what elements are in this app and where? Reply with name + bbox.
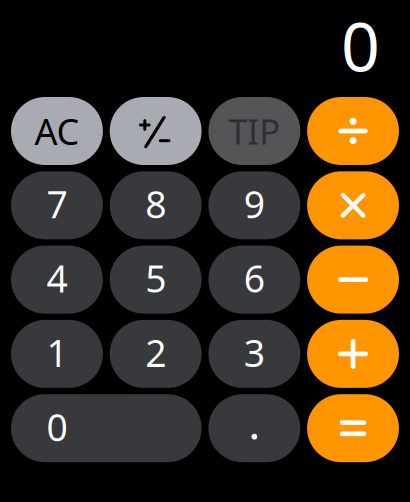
staticText: 6 [244,253,265,303]
staticText: TIP [228,108,280,154]
button[interactable]: AC [11,97,103,165]
button[interactable]: 2 [110,320,202,388]
button[interactable]: 3 [208,320,300,388]
button[interactable]: Decimal point [208,394,300,462]
button[interactable]: 7 [11,171,103,239]
staticText: 2 [145,328,166,377]
staticText: 0 [46,402,67,451]
button[interactable]: 1 [11,320,103,388]
button[interactable]: Minus [307,246,399,314]
button[interactable]: Plus minus [110,97,202,165]
button[interactable]: TIP [208,97,300,165]
staticText: 5 [145,253,166,303]
button[interactable]: 0 [11,394,202,462]
button[interactable]: 9 [208,171,300,239]
button[interactable]: 8 [110,171,202,239]
staticText: 1 [46,328,67,377]
button[interactable]: Equals [307,394,399,462]
staticText: 0 [341,0,380,90]
staticText: 8 [145,179,166,229]
staticText: AC [34,107,79,155]
button[interactable]: Multiply [307,171,399,239]
button[interactable]: Divide [307,97,399,165]
staticText: 7 [46,179,67,229]
staticText: 3 [244,328,265,377]
button[interactable]: 5 [110,246,202,314]
button[interactable]: 4 [11,246,103,314]
button[interactable]: Plus [307,320,399,388]
button[interactable]: 6 [208,246,300,314]
staticText: 4 [46,253,67,303]
staticText: 9 [244,179,265,229]
